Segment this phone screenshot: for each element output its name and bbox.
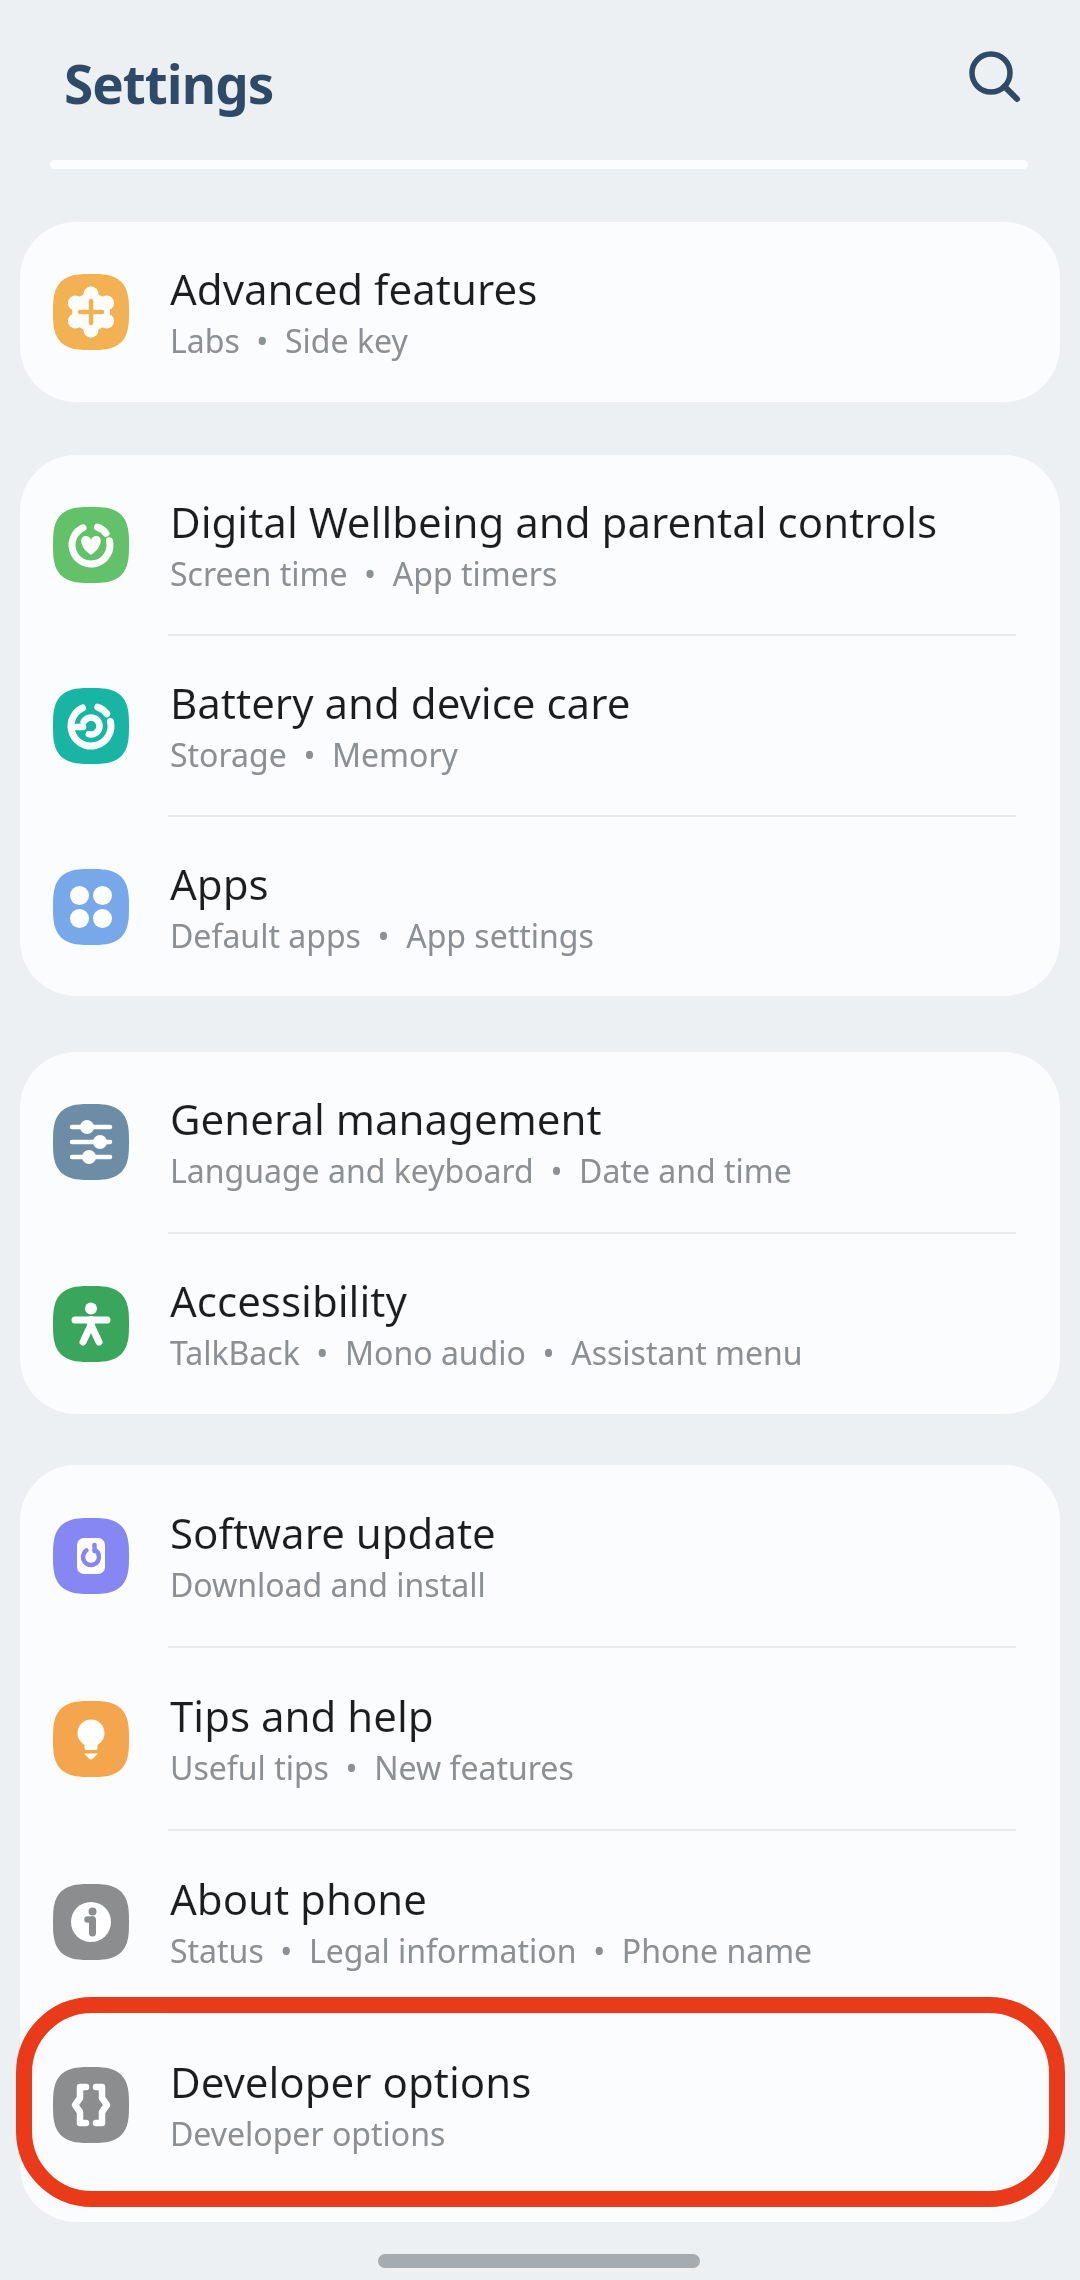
staticText: Developer options (170, 2053, 532, 2110)
staticText: Battery and device care (170, 674, 631, 731)
button[interactable]: Tips and help (20, 1648, 1060, 1829)
button[interactable]: Apps (20, 817, 1060, 996)
staticText: Apps (170, 855, 269, 912)
staticText: Status • Legal information • Phone name (170, 1929, 813, 1973)
button[interactable]: Battery and device care (20, 636, 1060, 815)
staticText: Settings (64, 47, 274, 119)
staticText: TalkBack • Mono audio • Assistant menu (170, 1331, 803, 1375)
staticText: Useful tips • New features (170, 1746, 574, 1790)
staticText: Screen time • App timers (170, 552, 558, 596)
staticText: Labs • Side key (170, 319, 408, 363)
staticText: Default apps • App settings (170, 914, 594, 958)
staticText: Download and install (170, 1563, 486, 1607)
button[interactable]: General management (20, 1052, 1060, 1232)
button[interactable]: Digital Wellbeing and parental controls (20, 455, 1060, 634)
staticText: Tips and help (170, 1687, 434, 1744)
button[interactable]: Software update (20, 1465, 1060, 1646)
staticText: Software update (170, 1504, 496, 1561)
staticText: Storage • Memory (170, 733, 458, 777)
staticText: Digital Wellbeing and parental controls (170, 493, 938, 550)
staticText: Accessibility (170, 1272, 407, 1329)
button[interactable]: About phone (20, 1831, 1060, 2012)
button[interactable]: Developer options (20, 2014, 1060, 2195)
staticText: About phone (170, 1870, 427, 1927)
button[interactable]: Advanced features (20, 222, 1060, 402)
button[interactable] (958, 42, 1024, 108)
staticText: Language and keyboard • Date and time (170, 1149, 792, 1193)
staticText: Advanced features (170, 260, 538, 317)
button[interactable]: Accessibility (20, 1234, 1060, 1414)
staticText: Developer options (170, 2112, 446, 2156)
staticText: General management (170, 1090, 602, 1147)
